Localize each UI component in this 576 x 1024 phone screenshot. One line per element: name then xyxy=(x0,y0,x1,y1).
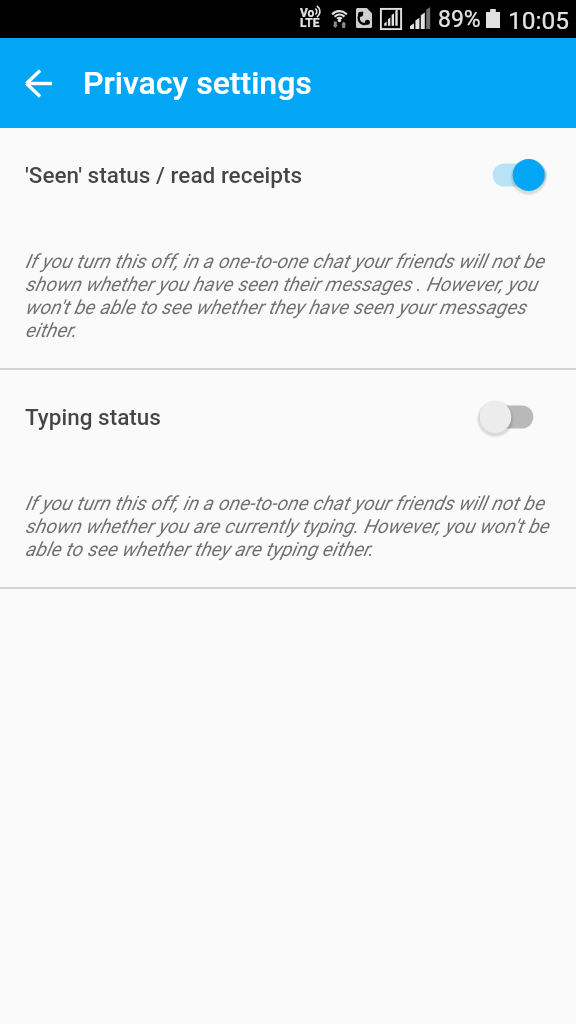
staticText: LTE xyxy=(300,16,320,30)
staticText: If you turn this off, in a one-to-one ch… xyxy=(25,250,556,342)
staticText: 'Seen' status / read receipts xyxy=(25,162,303,188)
staticText: 10:05 xyxy=(508,6,570,35)
staticText: Typing status xyxy=(25,404,161,430)
staticText: If you turn this off, in a one-to-one ch… xyxy=(25,492,556,561)
staticText: Privacy settings xyxy=(83,64,312,102)
button[interactable]: Back xyxy=(12,57,64,109)
button[interactable]: Typing status, off xyxy=(456,389,576,445)
button[interactable]: 'Seen' status / read receipts, on xyxy=(456,147,576,203)
staticText: 89% xyxy=(438,6,481,33)
button[interactable]: Typing status xyxy=(0,373,576,461)
staticText: Vo xyxy=(300,6,315,20)
button[interactable]: 'Seen' status / read receipts xyxy=(0,131,576,219)
